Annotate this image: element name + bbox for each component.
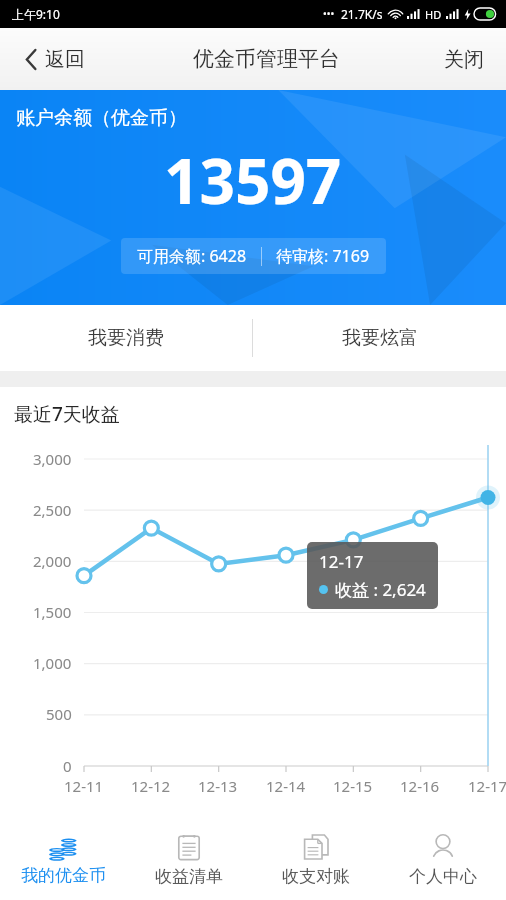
staticText: 待审核: 7169 [276, 245, 370, 267]
staticText: 返回 [45, 47, 85, 72]
staticText: 最近7天收益 [14, 401, 120, 427]
staticText: 12-17 [468, 776, 506, 796]
staticText: 收支对账 [282, 866, 350, 887]
staticText: 可用余额: 6428 [137, 245, 247, 267]
staticText: 我要消费 [88, 326, 164, 350]
staticText: 12-12 [131, 776, 171, 796]
staticText: 优金币管理平台 [193, 46, 340, 72]
staticText: 我的优金币 [21, 865, 106, 886]
staticText: 21.7K/s [341, 6, 383, 22]
staticText: 上午9:10 [12, 6, 60, 22]
button[interactable]: 关闭 [436, 39, 492, 80]
button[interactable]: 个人中心 [379, 818, 506, 900]
staticText: 12-14 [266, 776, 306, 796]
button[interactable]: 收支对账 [252, 818, 379, 900]
button[interactable]: 我要消费 [0, 305, 252, 371]
staticText: 2,000 [33, 551, 72, 571]
staticText: HD [425, 7, 442, 22]
staticText: 3,000 [33, 449, 72, 469]
button[interactable]: 我要炫富 [253, 305, 506, 371]
staticText: 关闭 [444, 47, 484, 72]
staticText: 12-17 [319, 550, 364, 573]
staticText: ••• [323, 7, 335, 21]
staticText: 2,500 [33, 500, 72, 520]
staticText: 12-15 [333, 776, 373, 796]
staticText: 0 [63, 756, 72, 776]
staticText: 个人中心 [409, 866, 477, 887]
staticText: 我要炫富 [342, 326, 418, 350]
staticText: 收益 : 2,624 [335, 578, 426, 601]
staticText: 12-13 [198, 776, 238, 796]
staticText: 12-16 [400, 776, 440, 796]
staticText: 1,000 [33, 653, 72, 673]
staticText: 1,500 [33, 602, 72, 622]
staticText: 12-11 [64, 776, 104, 796]
staticText: 13597 [164, 138, 342, 222]
staticText: 500 [46, 704, 72, 724]
staticText: 收益清单 [155, 866, 223, 887]
staticText: 账户余额（优金币） [16, 106, 187, 130]
button[interactable]: 返回 [14, 39, 97, 80]
button[interactable]: 我的优金币 [0, 818, 126, 900]
button[interactable]: 收益清单 [126, 818, 252, 900]
